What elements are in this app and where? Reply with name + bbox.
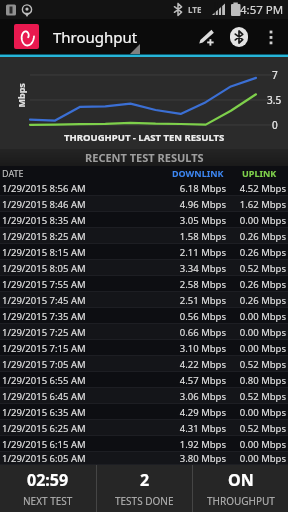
button[interactable]: 1/29/2015 6:35 AM	[0, 404, 288, 420]
staticText: 4.22 Mbps	[170, 358, 226, 371]
staticText: 2	[140, 469, 150, 491]
staticText: 0.52 Mbps	[230, 390, 286, 403]
button[interactable]: App icon	[14, 24, 39, 49]
button[interactable]: 1/29/2015 7:45 AM	[0, 292, 288, 308]
staticText: Mbps	[14, 82, 26, 107]
button[interactable]: 1/29/2015 6:45 AM	[0, 388, 288, 404]
staticText: 0.52 Mbps	[230, 422, 286, 435]
staticText: 4.31 Mbps	[170, 422, 226, 435]
staticText: 1/29/2015 6:45 AM	[2, 390, 86, 403]
staticText: 0	[272, 118, 278, 132]
staticText: 0.56 Mbps	[170, 310, 226, 323]
staticText: 0.26 Mbps	[230, 230, 286, 243]
staticText: 1/29/2015 6:25 AM	[2, 422, 86, 435]
button[interactable]: 1/29/2015 6:25 AM	[0, 420, 288, 436]
staticText: THROUGHPUT - LAST TEN RESULTS	[64, 131, 225, 144]
button[interactable]: 1/29/2015 6:15 AM	[0, 436, 288, 452]
button[interactable]: 1/29/2015 8:46 AM	[0, 196, 288, 212]
staticText: 1.62 Mbps	[230, 198, 286, 211]
staticText: 6.18 Mbps	[170, 182, 226, 195]
staticText: 1/29/2015 7:35 AM	[2, 310, 86, 323]
staticText: 0.00 Mbps	[230, 214, 286, 227]
button[interactable]: 1/29/2015 8:25 AM	[0, 228, 288, 244]
staticText: 1/29/2015 8:25 AM	[2, 230, 86, 243]
button[interactable]: ON	[193, 465, 288, 512]
button[interactable]: 1/29/2015 8:56 AM	[0, 180, 288, 196]
staticText: NEXT TEST	[23, 494, 73, 508]
staticText: 0.26 Mbps	[230, 294, 286, 307]
staticText: 02:59	[27, 469, 69, 491]
button[interactable]: 1/29/2015 7:05 AM	[0, 356, 288, 372]
staticText: 4.29 Mbps	[170, 406, 226, 419]
staticText: 1/29/2015 6:35 AM	[2, 406, 86, 419]
staticText: 1/29/2015 8:05 AM	[2, 262, 86, 275]
staticText: 1/29/2015 7:25 AM	[2, 326, 86, 339]
staticText: DOWNLINK	[172, 167, 224, 179]
staticText: 1/29/2015 7:55 AM	[2, 278, 86, 291]
button[interactable]: 1/29/2015 8:35 AM	[0, 212, 288, 228]
staticText: 2.11 Mbps	[170, 246, 226, 259]
staticText: 0.00 Mbps	[230, 310, 286, 323]
staticText: 1/29/2015 8:46 AM	[2, 198, 86, 211]
staticText: ON	[228, 469, 254, 491]
button[interactable]: 1/29/2015 7:35 AM	[0, 308, 288, 324]
button[interactable]: Throughput	[53, 27, 138, 47]
staticText: 0.00 Mbps	[230, 406, 286, 419]
staticText: 0.00 Mbps	[230, 326, 286, 339]
staticText: 3.06 Mbps	[170, 390, 226, 403]
staticText: 1.58 Mbps	[170, 230, 226, 243]
staticText: 3.5	[267, 93, 282, 107]
staticText: 0.52 Mbps	[230, 262, 286, 275]
staticText: 1.92 Mbps	[170, 438, 226, 451]
staticText: 7	[272, 68, 278, 82]
staticText: 1/29/2015 6:05 AM	[2, 452, 86, 465]
button[interactable]: 1/29/2015 8:15 AM	[0, 244, 288, 260]
button[interactable]: 02:59	[0, 465, 96, 512]
staticText: 3.80 Mbps	[170, 452, 226, 465]
button[interactable]: Bluetooth	[222, 20, 256, 54]
staticText: UPLINK	[242, 167, 277, 179]
button[interactable]: 1/29/2015 8:05 AM	[0, 260, 288, 276]
staticText: 0.26 Mbps	[230, 278, 286, 291]
staticText: 0.00 Mbps	[230, 452, 286, 465]
staticText: 0.80 Mbps	[230, 374, 286, 387]
staticText: 1/29/2015 6:15 AM	[2, 438, 86, 451]
button[interactable]: 2	[97, 465, 192, 512]
button[interactable]: Add note	[188, 20, 222, 54]
staticText: 1/29/2015 8:15 AM	[2, 246, 86, 259]
staticText: LTE	[188, 4, 202, 15]
staticText: 0.00 Mbps	[230, 342, 286, 355]
staticText: 1/29/2015 7:15 AM	[2, 342, 86, 355]
staticText: 0.52 Mbps	[230, 358, 286, 371]
staticText: 1/29/2015 8:35 AM	[2, 214, 86, 227]
staticText: DATE	[2, 167, 24, 179]
staticText: 1/29/2015 6:55 AM	[2, 374, 86, 387]
button[interactable]: 1/29/2015 6:55 AM	[0, 372, 288, 388]
button[interactable]: 1/29/2015 7:25 AM	[0, 324, 288, 340]
staticText: 1/29/2015 8:56 AM	[2, 182, 86, 195]
staticText: 2.51 Mbps	[170, 294, 226, 307]
button[interactable]: More options	[256, 22, 286, 52]
staticText: 3.10 Mbps	[170, 342, 226, 355]
staticText: 1/29/2015 7:45 AM	[2, 294, 86, 307]
button[interactable]: 1/29/2015 7:55 AM	[0, 276, 288, 292]
staticText: RECENT TEST RESULTS	[85, 150, 204, 165]
button[interactable]: 1/29/2015 7:15 AM	[0, 340, 288, 356]
staticText: 0.66 Mbps	[170, 326, 226, 339]
staticText: 4.57 Mbps	[170, 374, 226, 387]
staticText: 4.96 Mbps	[170, 198, 226, 211]
staticText: 1/29/2015 7:05 AM	[2, 358, 86, 371]
staticText: 4:57 PM	[240, 2, 284, 18]
staticText: 2.58 Mbps	[170, 278, 226, 291]
staticText: 0.00 Mbps	[230, 438, 286, 451]
staticText: TESTS DONE	[115, 494, 174, 508]
staticText: THROUGHPUT	[207, 494, 275, 508]
staticText: 3.05 Mbps	[170, 214, 226, 227]
button[interactable]: 1/29/2015 6:05 AM	[0, 452, 288, 465]
staticText: 4.52 Mbps	[230, 182, 286, 195]
staticText: 3.34 Mbps	[170, 262, 226, 275]
staticText: 0.26 Mbps	[230, 246, 286, 259]
